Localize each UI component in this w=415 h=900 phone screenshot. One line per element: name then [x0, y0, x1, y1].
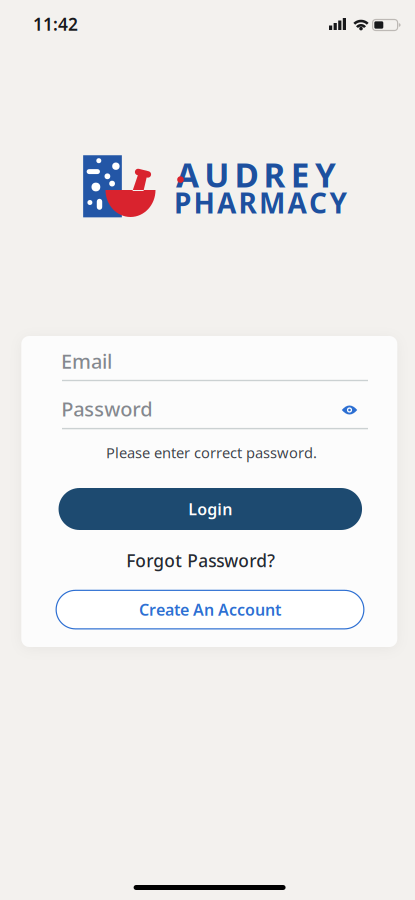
staticText: R — [238, 184, 256, 221]
staticText: E — [291, 152, 310, 197]
staticText: Email — [61, 348, 112, 374]
staticText: H — [193, 184, 214, 221]
staticText: Create An Account — [139, 599, 281, 620]
button[interactable]: Create An Account — [56, 590, 364, 629]
staticText: R — [264, 152, 286, 197]
staticText: C — [309, 184, 327, 221]
staticText: A — [217, 184, 236, 221]
staticText: A — [287, 184, 306, 221]
button[interactable]: Email — [62, 344, 368, 390]
staticText: D — [234, 152, 258, 197]
staticText: Please enter correct password. — [106, 443, 317, 462]
staticText: Login — [188, 498, 232, 520]
staticText: Forgot Password? — [126, 549, 275, 572]
staticText: 11:42 — [33, 12, 78, 35]
staticText: U — [204, 152, 229, 197]
button[interactable]: Login — [59, 488, 362, 530]
button[interactable]: Password — [62, 392, 368, 438]
button[interactable]: Forgot Password? — [126, 549, 275, 572]
staticText: Password — [61, 395, 152, 422]
staticText: Y — [315, 152, 336, 197]
staticText: P — [174, 184, 191, 221]
staticText: A — [176, 152, 199, 197]
staticText: M — [259, 184, 285, 221]
staticText: Y — [329, 184, 347, 221]
